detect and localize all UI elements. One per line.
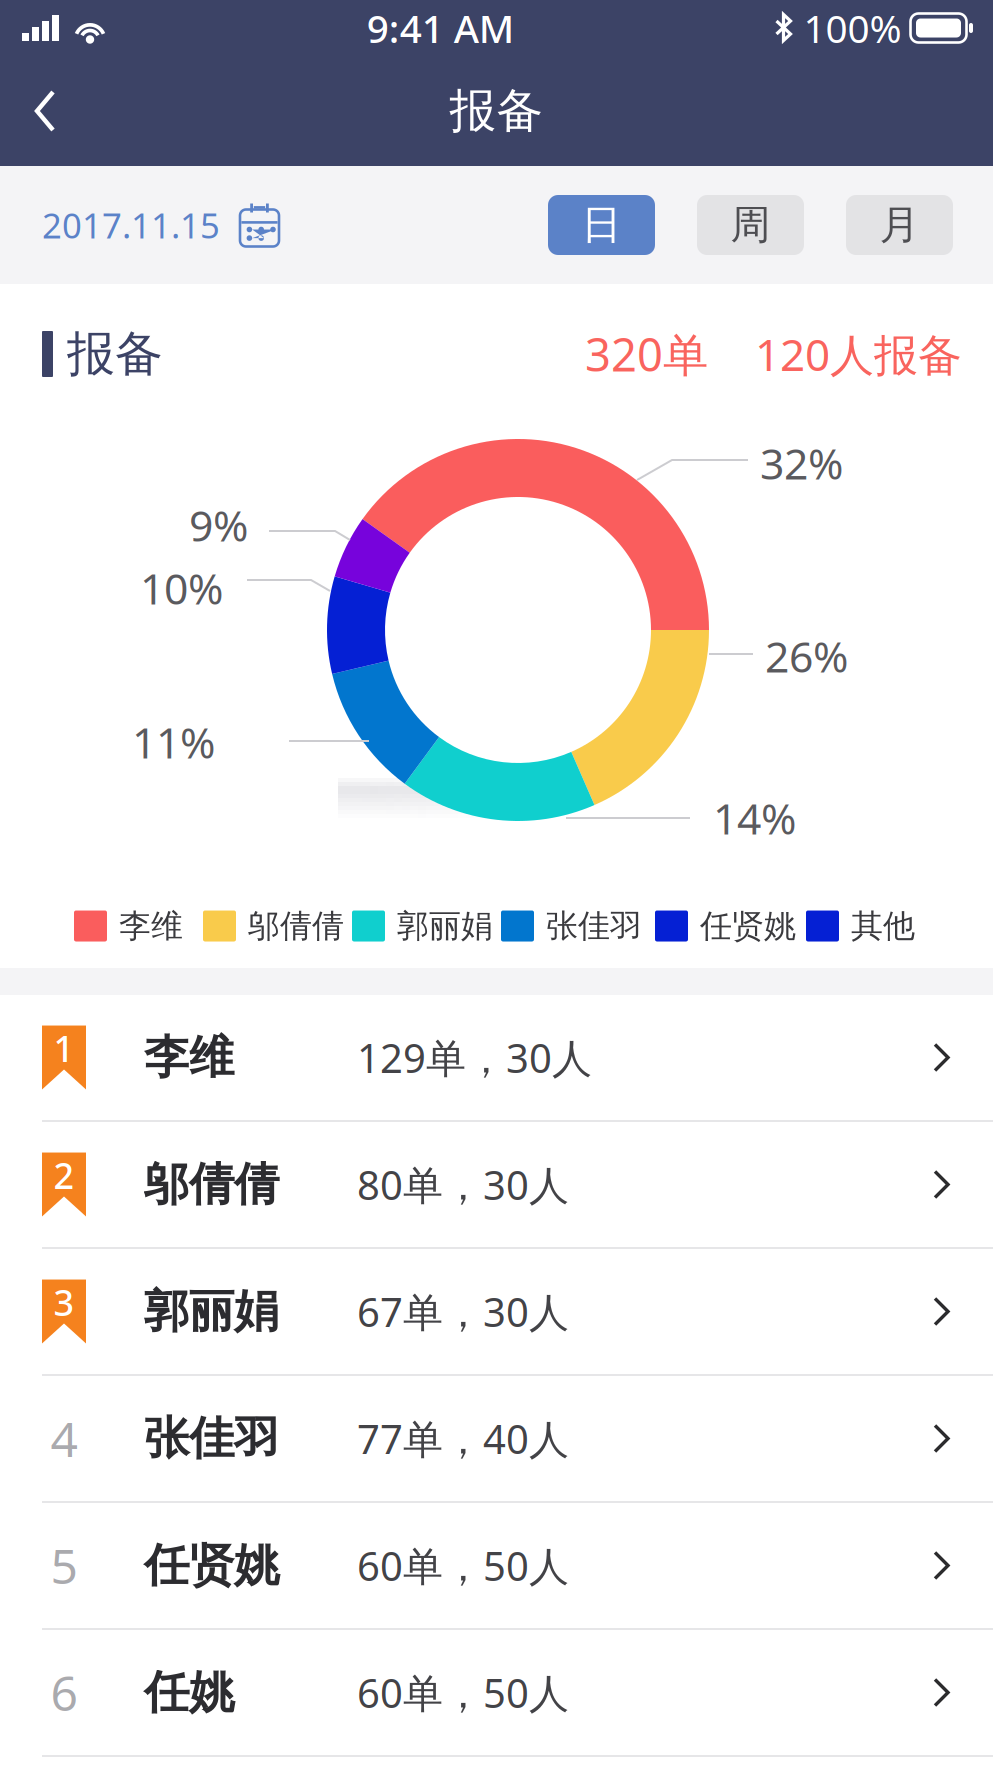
staticText: 9%: [189, 497, 248, 553]
staticText: 任姚: [144, 1665, 234, 1720]
button[interactable]: 3: [0, 1249, 993, 1374]
staticText: 张佳羽: [144, 1411, 279, 1466]
staticText: 邬倩倩: [144, 1157, 279, 1212]
staticText: 129单，30人: [357, 1031, 592, 1084]
button[interactable]: 1: [0, 995, 993, 1120]
button[interactable]: 日: [548, 195, 655, 255]
staticText: 周: [730, 200, 770, 249]
staticText: 邬倩倩: [248, 906, 344, 946]
staticText: 报备: [67, 324, 163, 383]
staticText: 60单，50人: [357, 1666, 569, 1719]
staticText: 80单，30人: [357, 1158, 569, 1211]
staticText: 任贤姚: [700, 906, 796, 946]
staticText: 67单，30人: [357, 1285, 569, 1338]
staticText: 120人报备: [755, 325, 962, 383]
staticText: 其他: [851, 906, 915, 946]
staticText: 4: [50, 1407, 77, 1470]
staticText: 26%: [765, 628, 848, 684]
staticText: 60单，50人: [357, 1539, 569, 1592]
staticText: 11%: [132, 714, 215, 770]
button[interactable]: 周: [697, 195, 804, 255]
button[interactable]: 4: [0, 1376, 993, 1501]
staticText: 100%: [803, 2, 901, 54]
staticText: 2017.11.15: [42, 202, 220, 248]
staticText: 9:41 AM: [367, 2, 514, 54]
staticText: 月: [879, 200, 919, 249]
button[interactable]: 2: [0, 1122, 993, 1247]
button[interactable]: 月: [846, 195, 953, 255]
staticText: 5: [50, 1534, 77, 1597]
staticText: 2: [53, 1151, 74, 1199]
staticText: 77单，40人: [357, 1412, 569, 1465]
button[interactable]: 2017.11.15: [0, 166, 309, 284]
staticText: 郭丽娟: [144, 1284, 279, 1339]
button[interactable]: Back: [0, 56, 98, 166]
staticText: 任贤姚: [144, 1538, 279, 1593]
staticText: 李维: [119, 906, 183, 946]
staticText: 报备: [449, 82, 543, 140]
staticText: 32%: [760, 435, 843, 491]
staticText: 320单: [585, 324, 708, 384]
button[interactable]: 5: [0, 1503, 993, 1628]
staticText: 1: [53, 1024, 74, 1072]
staticText: 6: [50, 1661, 77, 1724]
staticText: 14%: [713, 790, 796, 846]
button[interactable]: 6: [0, 1630, 993, 1755]
staticText: 郭丽娟: [397, 906, 493, 946]
staticText: 张佳羽: [546, 906, 642, 946]
staticText: 李维: [144, 1030, 234, 1085]
staticText: 3: [53, 1278, 74, 1326]
staticText: 日: [581, 200, 621, 249]
staticText: 10%: [140, 560, 223, 616]
